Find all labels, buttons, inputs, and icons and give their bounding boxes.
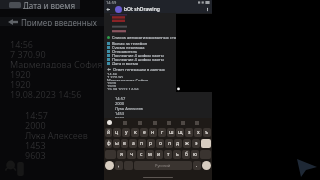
button[interactable]: ж	[183, 139, 191, 148]
staticText: ,	[118, 162, 120, 169]
button[interactable]: Backspace	[200, 150, 211, 159]
button[interactable]: ч	[127, 150, 136, 159]
staticText: я	[120, 151, 123, 158]
button[interactable]: в	[121, 139, 128, 148]
staticText: 14:57	[115, 96, 126, 101]
button[interactable]: з	[185, 128, 193, 137]
staticText: 14:56	[107, 72, 118, 75]
staticText: э	[195, 140, 198, 147]
staticText: щ	[178, 129, 183, 136]
staticText: 1453	[25, 139, 46, 149]
button[interactable]: п	[138, 139, 146, 148]
staticText: л	[168, 140, 171, 147]
staticText: ы	[115, 140, 119, 147]
other: Back	[106, 7, 111, 12]
button[interactable]: л	[165, 139, 173, 148]
button[interactable]: д	[174, 139, 182, 148]
button[interactable]: ф	[105, 139, 112, 148]
button[interactable]: у	[122, 128, 130, 137]
staticText: у	[125, 129, 128, 136]
button[interactable]: Отправитель	[105, 49, 175, 53]
staticText: г	[161, 129, 164, 136]
staticText: к	[134, 129, 137, 136]
staticText: 1920	[107, 84, 117, 87]
staticText: ц	[115, 129, 119, 136]
button[interactable]: с	[137, 150, 145, 159]
staticText: х	[197, 129, 200, 136]
button[interactable]: Дата и время	[0, 0, 80, 9]
staticText: б	[185, 151, 188, 158]
staticText: .	[196, 162, 198, 169]
button[interactable]: Voice input	[202, 161, 211, 170]
button[interactable]: р	[147, 139, 155, 148]
button[interactable]: б	[182, 150, 190, 159]
button[interactable]: Shift	[105, 150, 116, 159]
staticText: о	[159, 140, 162, 147]
button[interactable]: Список автоматизированных стоп/турдаты	[105, 35, 196, 39]
staticText: 1920	[10, 68, 31, 78]
button[interactable]: Switch language	[105, 161, 114, 170]
staticText: н	[151, 129, 155, 136]
button[interactable]: й	[105, 128, 112, 137]
button[interactable]: ъ	[203, 128, 211, 137]
button[interactable]: Ответ генерации в данных	[105, 67, 165, 71]
staticText: ъ	[205, 129, 209, 136]
staticText: п	[140, 140, 144, 147]
staticText: 14:57	[25, 109, 49, 119]
button[interactable]: Время за телефон	[105, 41, 175, 45]
button[interactable]: е	[140, 128, 148, 137]
staticText: Мармеладова София	[107, 78, 149, 81]
button[interactable]: а	[129, 139, 137, 148]
staticText: Дата и время	[112, 61, 139, 65]
button[interactable]: о	[156, 139, 164, 148]
button[interactable]: я	[117, 150, 126, 159]
button[interactable]: Последние 4 цифры карты списания	[105, 53, 175, 57]
button[interactable]: и	[155, 150, 163, 159]
button[interactable]: ш	[167, 128, 175, 137]
button[interactable]: х	[194, 128, 202, 137]
staticText: м	[148, 151, 152, 158]
staticText: ж	[185, 140, 189, 147]
button[interactable]: м	[146, 150, 154, 159]
staticText: Пример введенных да	[21, 17, 104, 26]
staticText: Русский	[155, 163, 171, 168]
button[interactable]: Clipboard	[107, 120, 112, 125]
staticText: 1453	[115, 111, 125, 116]
button[interactable]: Back	[104, 5, 212, 13]
button[interactable]: Последние 4 цифры карты зачисления	[105, 57, 175, 61]
staticText: ф	[107, 140, 111, 147]
staticText: 19.08.2023 14:56	[10, 88, 82, 98]
button[interactable]: ь	[173, 150, 181, 159]
button[interactable]: ,	[115, 161, 123, 170]
button[interactable]: ц	[113, 128, 121, 137]
button[interactable]: Enter	[201, 139, 211, 148]
button[interactable]: н	[149, 128, 157, 137]
staticText: bOt shDrawing	[124, 6, 160, 13]
button[interactable]: Дата и время	[105, 61, 175, 65]
staticText: Ответ генерации в данных	[113, 67, 165, 71]
button[interactable]: Русский	[134, 161, 192, 170]
staticText: 2000	[115, 101, 125, 106]
button[interactable]: г	[158, 128, 166, 137]
button[interactable]: щ	[176, 128, 184, 137]
button[interactable]: ю	[191, 150, 199, 159]
staticText: й	[107, 129, 111, 136]
button[interactable]: .	[193, 161, 201, 170]
staticText: ч	[130, 151, 133, 158]
staticText: Сумма перевода	[112, 45, 145, 49]
button[interactable]: Сумма перевода	[105, 45, 175, 49]
button[interactable]	[124, 161, 133, 170]
button[interactable]: ы	[113, 139, 120, 148]
staticText: 19.08.2023 14:56	[107, 87, 139, 90]
button[interactable]: э	[192, 139, 200, 148]
staticText: ь	[176, 151, 179, 158]
button[interactable]: т	[164, 150, 172, 159]
button[interactable]: к	[131, 128, 139, 137]
button[interactable]: Пример введенных да	[0, 17, 104, 26]
